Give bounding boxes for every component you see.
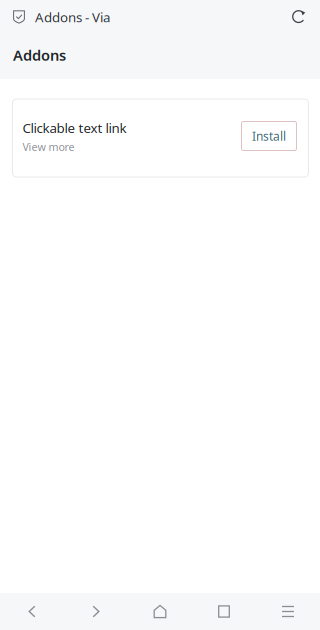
staticText: Addons: [13, 45, 66, 65]
staticText: Clickable text link: [22, 119, 126, 137]
button[interactable]: Home: [128, 593, 192, 629]
button[interactable]: Menu: [256, 593, 320, 629]
staticText: Install: [252, 128, 286, 144]
staticText: Addons - Via: [35, 8, 110, 26]
button[interactable]: Clickable text link: [12, 99, 308, 177]
button[interactable]: Back: [0, 593, 64, 629]
staticText: View more: [22, 140, 74, 154]
button[interactable]: Reload: [283, 2, 315, 31]
button[interactable]: Forward: [64, 593, 128, 629]
button[interactable]: Tabs: [192, 593, 256, 629]
